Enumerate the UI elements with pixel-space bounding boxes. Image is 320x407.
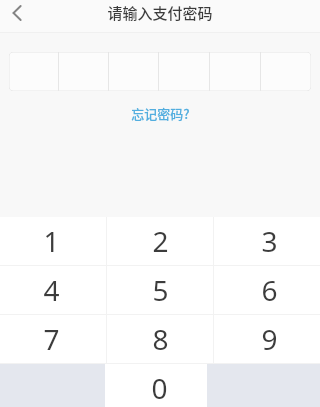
button[interactable]: 忘记密码? xyxy=(121,99,200,128)
button[interactable]: 8 xyxy=(107,315,213,363)
button[interactable]: 3 xyxy=(214,217,320,265)
staticText: 忘记密码? xyxy=(131,104,190,123)
button[interactable]: 1 xyxy=(0,217,106,265)
staticText: 1 xyxy=(43,222,60,260)
staticText: 0 xyxy=(151,369,168,407)
button[interactable]: 6 xyxy=(214,266,320,314)
staticText: 7 xyxy=(43,320,60,358)
staticText: 4 xyxy=(43,271,60,309)
button[interactable] xyxy=(9,52,311,91)
staticText: 请输入支付密码 xyxy=(107,2,213,24)
staticText: 5 xyxy=(152,271,169,309)
button[interactable]: 2 xyxy=(107,217,213,265)
staticText: 9 xyxy=(261,320,278,358)
staticText: 8 xyxy=(152,320,169,358)
staticText: 3 xyxy=(261,222,278,260)
button[interactable]: 4 xyxy=(0,266,106,314)
button[interactable]: 返回 xyxy=(0,0,40,32)
staticText: 2 xyxy=(152,222,169,260)
button[interactable]: 9 xyxy=(214,315,320,363)
button[interactable]: 0 xyxy=(105,364,207,407)
button[interactable]: 7 xyxy=(0,315,106,363)
staticText: 6 xyxy=(261,271,278,309)
button[interactable]: 5 xyxy=(107,266,213,314)
